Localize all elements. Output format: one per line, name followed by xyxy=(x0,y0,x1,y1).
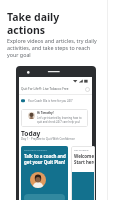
staticText: Today xyxy=(21,129,41,138)
staticText: Take daily actions xyxy=(7,10,60,37)
button[interactable]: Hi Timothy! xyxy=(21,109,88,127)
staticText: Let's get started by learning how to qui… xyxy=(37,116,87,124)
button[interactable] xyxy=(24,194,65,200)
button[interactable]: Your Coach Ella is here for you 24/7 xyxy=(21,99,73,103)
staticText: Talk to a coach and get your Quit Plan! xyxy=(24,153,66,166)
staticText: Quit For Life®: Live Tobacco Free xyxy=(21,87,69,91)
staticText: Explore videos and articles, try daily a… xyxy=(7,37,100,58)
button[interactable]: GET STARTED xyxy=(71,146,95,200)
staticText: GET STARTED xyxy=(74,149,89,152)
staticText: Hi Timothy! xyxy=(37,111,54,115)
button[interactable]: COACHING SUPPORT xyxy=(21,146,68,200)
staticText: Day 1 · Prepare to Quit With Confidence xyxy=(21,137,75,141)
staticText: Your Coach Ella is here for you 24/7 xyxy=(28,99,73,103)
staticText: Welcome! Start here xyxy=(74,153,95,166)
button[interactable]: Account xyxy=(85,87,90,92)
staticText: COACHING SUPPORT xyxy=(24,149,47,152)
